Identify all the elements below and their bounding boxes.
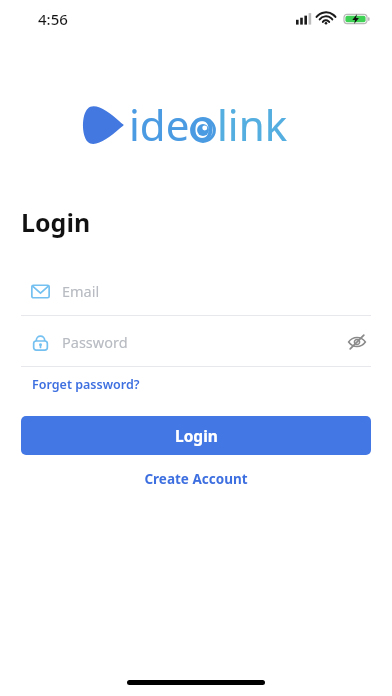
staticText: Password <box>62 332 343 352</box>
staticText: Login <box>21 205 91 239</box>
staticText: Email <box>62 281 371 301</box>
staticText: link <box>217 96 288 153</box>
staticText: 4:56 <box>38 9 68 29</box>
staticText: Create Account <box>144 470 248 488</box>
button[interactable]: Forget password? <box>21 373 151 396</box>
staticText: Forget password? <box>32 376 140 393</box>
staticText: ideo <box>129 96 215 153</box>
button[interactable]: Email <box>0 272 392 316</box>
button[interactable]: Password <box>0 323 392 367</box>
button[interactable]: Show password <box>343 328 371 356</box>
button[interactable]: Create Account <box>0 466 392 491</box>
staticText: Login <box>175 425 218 446</box>
button[interactable]: Login <box>21 416 371 455</box>
